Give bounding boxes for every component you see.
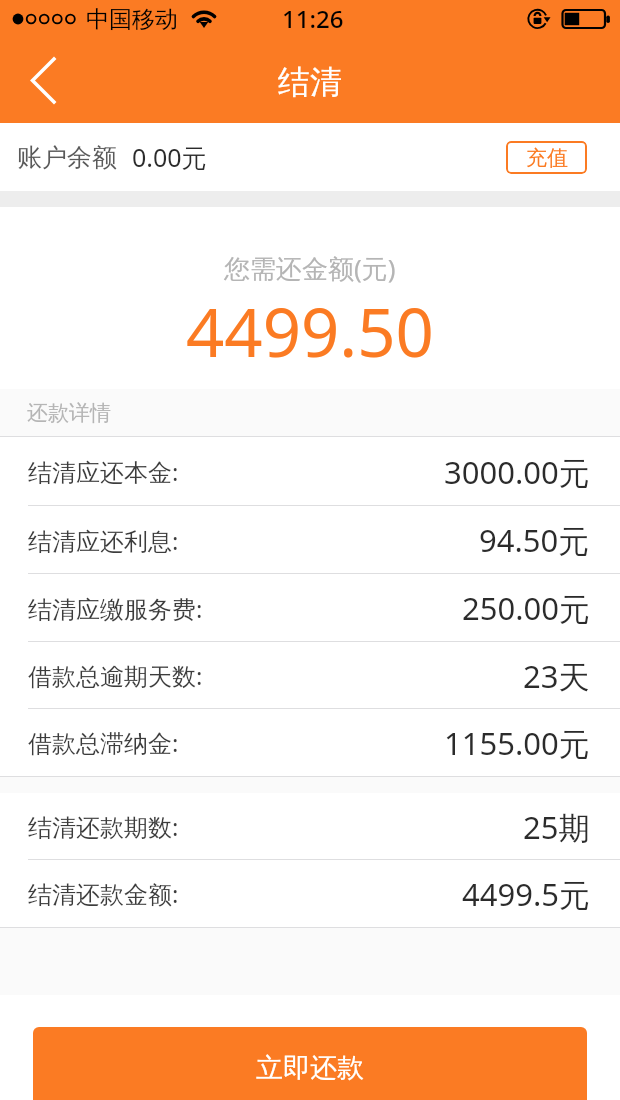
staticText: 结清应还利息: (28, 524, 179, 557)
staticText: 0.00元 (132, 140, 207, 174)
button[interactable]: 充值 (506, 141, 587, 174)
staticText: 3000.00元 (444, 451, 590, 493)
button[interactable]: 立即还款 (33, 1027, 587, 1100)
staticText: 11:26 (282, 2, 344, 35)
staticText: 23天 (523, 655, 590, 697)
staticText: 4499.5元 (462, 873, 590, 915)
staticText: 结清应缴服务费: (28, 592, 203, 625)
button[interactable]: 结清应还本金: (0, 437, 620, 506)
button[interactable]: 结清应还利息: (0, 506, 620, 574)
staticText: 您需还金额(元) (224, 250, 396, 286)
staticText: 25期 (523, 806, 590, 848)
staticText: 还款详情 (27, 400, 111, 426)
staticText: 结清应还本金: (28, 455, 179, 488)
button[interactable]: 借款总逾期天数: (0, 642, 620, 709)
staticText: 4499.50 (186, 285, 434, 376)
staticText: 94.50元 (479, 519, 590, 561)
button[interactable]: 借款总滞纳金: (0, 709, 620, 776)
button[interactable]: 结清应缴服务费: (0, 574, 620, 642)
button[interactable]: 结清还款金额: (0, 860, 620, 927)
staticText: 结清 (278, 62, 342, 102)
button[interactable]: 结清还款期数: (0, 793, 620, 860)
staticText: 账户余额 (17, 142, 117, 173)
staticText: 1155.00元 (444, 722, 590, 764)
staticText: 借款总滞纳金: (28, 726, 179, 759)
staticText: 中国移动 (86, 5, 178, 34)
staticText: 结清还款金额: (28, 877, 179, 910)
staticText: 立即还款 (256, 1051, 364, 1085)
button[interactable]: Back (0, 40, 84, 123)
staticText: 250.00元 (462, 587, 590, 629)
staticText: 结清还款期数: (28, 810, 179, 843)
staticText: 充值 (526, 145, 568, 171)
staticText: 借款总逾期天数: (28, 659, 203, 692)
